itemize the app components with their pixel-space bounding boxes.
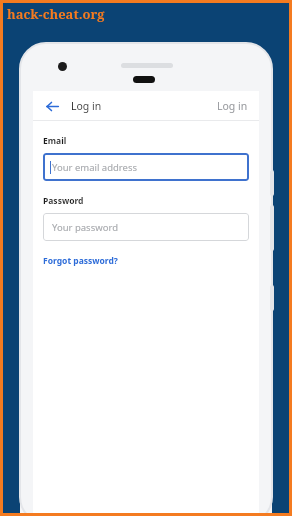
button[interactable]: Back (42, 96, 62, 116)
staticText: Your password (52, 221, 118, 234)
staticText: Your email address (52, 161, 138, 174)
staticText: Log in (217, 99, 248, 113)
button[interactable]: Forgot password? (43, 253, 118, 269)
button[interactable]: Your password (43, 213, 249, 241)
staticText: Password (43, 195, 84, 207)
button[interactable]: Log in (215, 95, 250, 117)
staticText: hack-cheat.org (7, 5, 105, 23)
staticText: Email (43, 135, 67, 147)
staticText: Forgot password? (43, 255, 118, 267)
staticText: Log in (71, 99, 102, 113)
button[interactable]: Your email address (43, 153, 249, 181)
